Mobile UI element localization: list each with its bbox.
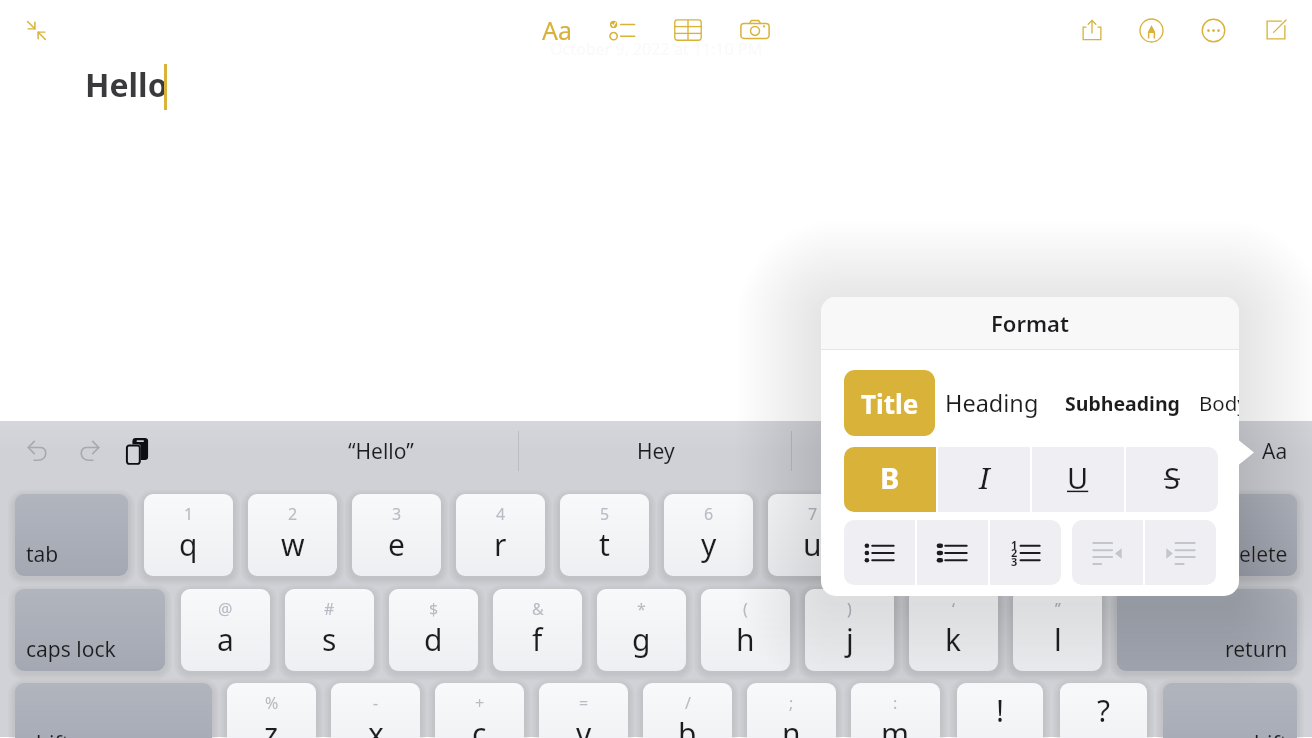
staticText: 7 <box>808 503 818 525</box>
button[interactable] <box>1145 520 1216 585</box>
staticText: Body <box>1199 389 1239 417</box>
button[interactable]: ‘ <box>909 589 998 671</box>
button[interactable]: S <box>1126 447 1218 512</box>
button[interactable]: Redo <box>66 428 111 473</box>
staticText: # <box>324 598 335 620</box>
button[interactable]: New note <box>1254 8 1298 52</box>
button[interactable]: 1 <box>144 494 233 576</box>
staticText: f <box>532 619 543 660</box>
staticText: % <box>265 692 279 714</box>
button[interactable]: Subheading <box>1065 370 1180 436</box>
button[interactable]: 6 <box>664 494 753 576</box>
staticText: “Hello” <box>348 437 414 466</box>
button[interactable]: 9 <box>976 494 1065 576</box>
button[interactable]: : <box>851 683 940 738</box>
staticText: shift <box>1244 729 1288 738</box>
button[interactable]: ! <box>957 683 1043 738</box>
staticText: 3 <box>1011 554 1018 569</box>
button[interactable]: ) <box>805 589 894 671</box>
staticText: & <box>532 598 544 620</box>
button[interactable]: & <box>493 589 582 671</box>
button[interactable]: I <box>938 447 1030 512</box>
button[interactable]: # <box>285 589 374 671</box>
staticText: s <box>322 619 337 660</box>
button[interactable]: 3 <box>352 494 441 576</box>
button[interactable]: + <box>435 683 524 738</box>
button[interactable]: 1 <box>990 520 1061 585</box>
button[interactable]: Checklist <box>600 8 644 52</box>
staticText: 1 <box>184 503 194 525</box>
staticText: u <box>803 524 822 565</box>
staticText: = <box>579 692 589 714</box>
button[interactable] <box>917 520 988 585</box>
staticText: o <box>1011 524 1030 565</box>
staticText: caps lock <box>26 635 116 664</box>
button[interactable]: Heading <box>945 370 1039 436</box>
button[interactable]: tab <box>15 494 128 576</box>
button[interactable]: $ <box>389 589 478 671</box>
button[interactable]: ? <box>1060 683 1147 738</box>
button[interactable]: shift <box>1163 683 1297 738</box>
staticText: tab <box>26 540 59 569</box>
button[interactable]: “Hello” <box>311 429 451 473</box>
staticText: a <box>217 619 234 660</box>
button[interactable]: 7 <box>768 494 857 576</box>
staticText: t <box>599 524 610 565</box>
button[interactable]: 4 <box>456 494 545 576</box>
button[interactable]: Body <box>1199 370 1239 436</box>
button[interactable]: 5 <box>560 494 649 576</box>
button[interactable]: return <box>1117 589 1297 671</box>
button[interactable] <box>1072 520 1143 585</box>
staticText: Hello <box>85 63 168 107</box>
button[interactable]: - <box>331 683 420 738</box>
staticText: : <box>893 692 898 714</box>
staticText: ” <box>1055 598 1061 620</box>
staticText: 0 <box>1120 503 1130 525</box>
button[interactable]: Table <box>666 8 710 52</box>
button[interactable]: ( <box>701 589 790 671</box>
staticText: * <box>637 598 646 620</box>
button[interactable]: Text format <box>533 6 581 54</box>
button[interactable]: / <box>643 683 732 738</box>
button[interactable]: @ <box>181 589 270 671</box>
staticText: 3 <box>392 503 402 525</box>
button[interactable]: Title <box>844 370 935 436</box>
staticText: g <box>632 619 651 660</box>
staticText: Aa <box>1262 437 1288 466</box>
staticText: / <box>685 692 691 714</box>
button[interactable]: Hey <box>586 429 726 473</box>
button[interactable]: Collapse <box>14 8 58 52</box>
button[interactable]: Camera <box>733 8 777 52</box>
button[interactable]: % <box>227 683 316 738</box>
staticText: l <box>1054 619 1062 660</box>
button[interactable]: Paste <box>115 428 160 473</box>
staticText: e <box>388 524 405 565</box>
staticText: 8 <box>912 503 922 525</box>
button[interactable]: Undo <box>15 428 60 473</box>
button[interactable]: Aa <box>1205 429 1312 473</box>
staticText: c <box>472 713 487 738</box>
button[interactable]: Markup <box>1129 8 1173 52</box>
button[interactable] <box>844 520 915 585</box>
button[interactable]: 2 <box>248 494 337 576</box>
button[interactable]: 0 <box>1080 494 1169 576</box>
staticText: - <box>373 692 379 714</box>
button[interactable]: ” <box>1013 589 1102 671</box>
staticText: 2 <box>1011 545 1018 560</box>
button[interactable]: ; <box>747 683 836 738</box>
button[interactable]: shift <box>15 683 212 738</box>
button[interactable]: Share <box>1070 8 1114 52</box>
staticText: m <box>881 713 910 738</box>
button[interactable]: B <box>844 447 936 512</box>
button[interactable]: More <box>1191 8 1235 52</box>
staticText: $ <box>429 598 439 620</box>
button[interactable]: * <box>597 589 686 671</box>
button[interactable]: caps lock <box>15 589 165 671</box>
button[interactable]: = <box>539 683 628 738</box>
button[interactable]: U <box>1032 447 1124 512</box>
staticText: Heading <box>945 387 1039 419</box>
staticText: z <box>264 713 279 738</box>
button[interactable]: 8 <box>872 494 961 576</box>
staticText: Aa <box>542 13 573 47</box>
button[interactable]: delete <box>1184 494 1297 576</box>
